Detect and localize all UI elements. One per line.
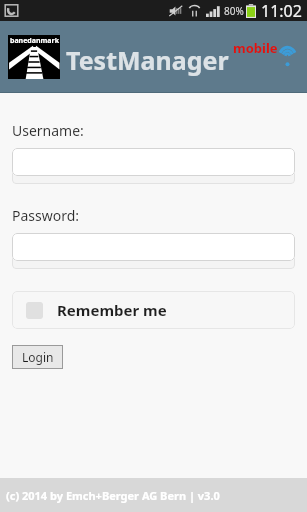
staticText: Login (22, 349, 54, 365)
staticText: Password: (12, 206, 80, 225)
staticText: 11:02 (261, 0, 302, 21)
button[interactable] (12, 233, 295, 261)
staticText: Remember me (57, 300, 167, 320)
staticText: banedanmark (10, 36, 59, 46)
staticText: 80% (224, 4, 244, 18)
staticText: mobile (233, 39, 278, 57)
staticText: Username: (12, 121, 84, 140)
button[interactable]: Remember me (12, 291, 295, 329)
staticText: (c) 2014 by Emch+Berger AG Bern | v3.0 (6, 488, 220, 503)
button[interactable]: Login (13, 346, 62, 368)
button[interactable] (12, 148, 295, 176)
staticText: TestManager (66, 43, 229, 77)
button[interactable]: Connection status (278, 42, 297, 72)
